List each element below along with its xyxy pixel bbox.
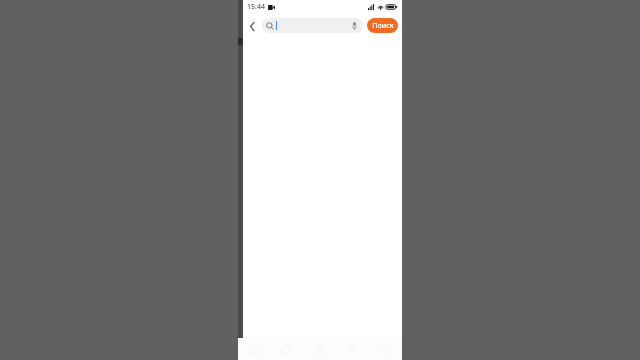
button[interactable]: Voice search: [262, 18, 363, 33]
button[interactable]: Voice search: [350, 21, 359, 30]
button[interactable]: Поиск: [367, 18, 398, 33]
staticText: Поиск: [372, 21, 394, 31]
staticText: 15:44: [247, 2, 265, 12]
button[interactable]: Back: [245, 19, 259, 33]
